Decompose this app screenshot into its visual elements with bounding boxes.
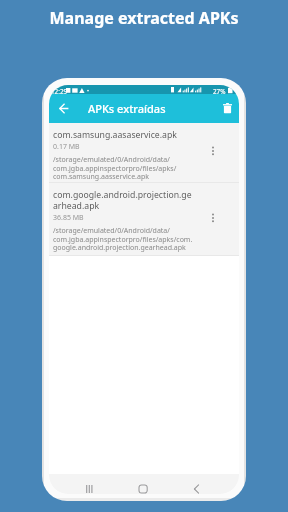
button[interactable]: Delete all xyxy=(216,97,238,119)
button[interactable]: com.samsung.aasaservice.apk xyxy=(49,123,239,183)
button[interactable]: More options xyxy=(204,142,222,160)
staticText: APKs extraídas xyxy=(88,101,166,116)
button[interactable]: More options xyxy=(204,209,222,227)
staticText: 27% xyxy=(213,87,226,96)
staticText: 12:29 xyxy=(51,87,68,96)
staticText: 0.17 MB xyxy=(53,142,80,152)
staticText: /storage/emulated/0/Android/data/ com.jg… xyxy=(53,226,193,252)
button[interactable]: Navigate up xyxy=(53,97,75,119)
button[interactable]: Recent apps xyxy=(77,474,102,494)
button[interactable]: com.google.android.projection.ge arhead.… xyxy=(49,183,239,256)
button[interactable]: Back xyxy=(184,474,209,494)
staticText: 36.85 MB xyxy=(53,213,84,223)
staticText: Manage extracted APKs xyxy=(0,7,288,29)
staticText: com.samsung.aasaservice.apk xyxy=(53,129,177,141)
button[interactable]: Home xyxy=(130,474,156,494)
staticText: /storage/emulated/0/Android/data/ com.jg… xyxy=(53,155,177,181)
staticText: com.google.android.projection.ge arhead.… xyxy=(53,189,192,212)
